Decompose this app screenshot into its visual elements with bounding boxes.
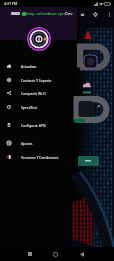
button[interactable]: Ajustes [0, 136, 71, 149]
button[interactable]: Settings [91, 10, 99, 18]
staticText: Terminos Y Condiciones [21, 155, 59, 159]
button[interactable]: Cloud [78, 10, 86, 18]
button[interactable]: Terminos Y Condiciones [0, 150, 71, 163]
staticText: 4:31 PM [4, 1, 18, 6]
button[interactable]: Compartir Wi-Fi [0, 86, 71, 99]
button[interactable]: Recent apps [24, 248, 36, 260]
staticText: Compartir Wi-Fi [21, 91, 46, 95]
button[interactable]: SpeedTest [0, 100, 71, 113]
button[interactable]: Back [76, 248, 88, 260]
button[interactable]: More options [105, 10, 113, 18]
staticText: Contacto Y Soporte [21, 78, 52, 82]
staticText: Configurar APN [21, 123, 46, 127]
button[interactable]: Actualizar [0, 59, 71, 72]
staticText: http colombian vpn [26, 11, 65, 16]
button[interactable]: Configurar APN [0, 118, 71, 131]
staticText: Dev [65, 11, 73, 16]
button[interactable]: Home [49, 248, 61, 260]
staticText: Ajustes [21, 141, 33, 145]
staticText: SpeedTest [21, 105, 38, 109]
staticText: 3002 [11, 11, 22, 16]
button[interactable]: Contacto Y Soporte [0, 73, 71, 86]
staticText: Actualizar [21, 64, 37, 68]
